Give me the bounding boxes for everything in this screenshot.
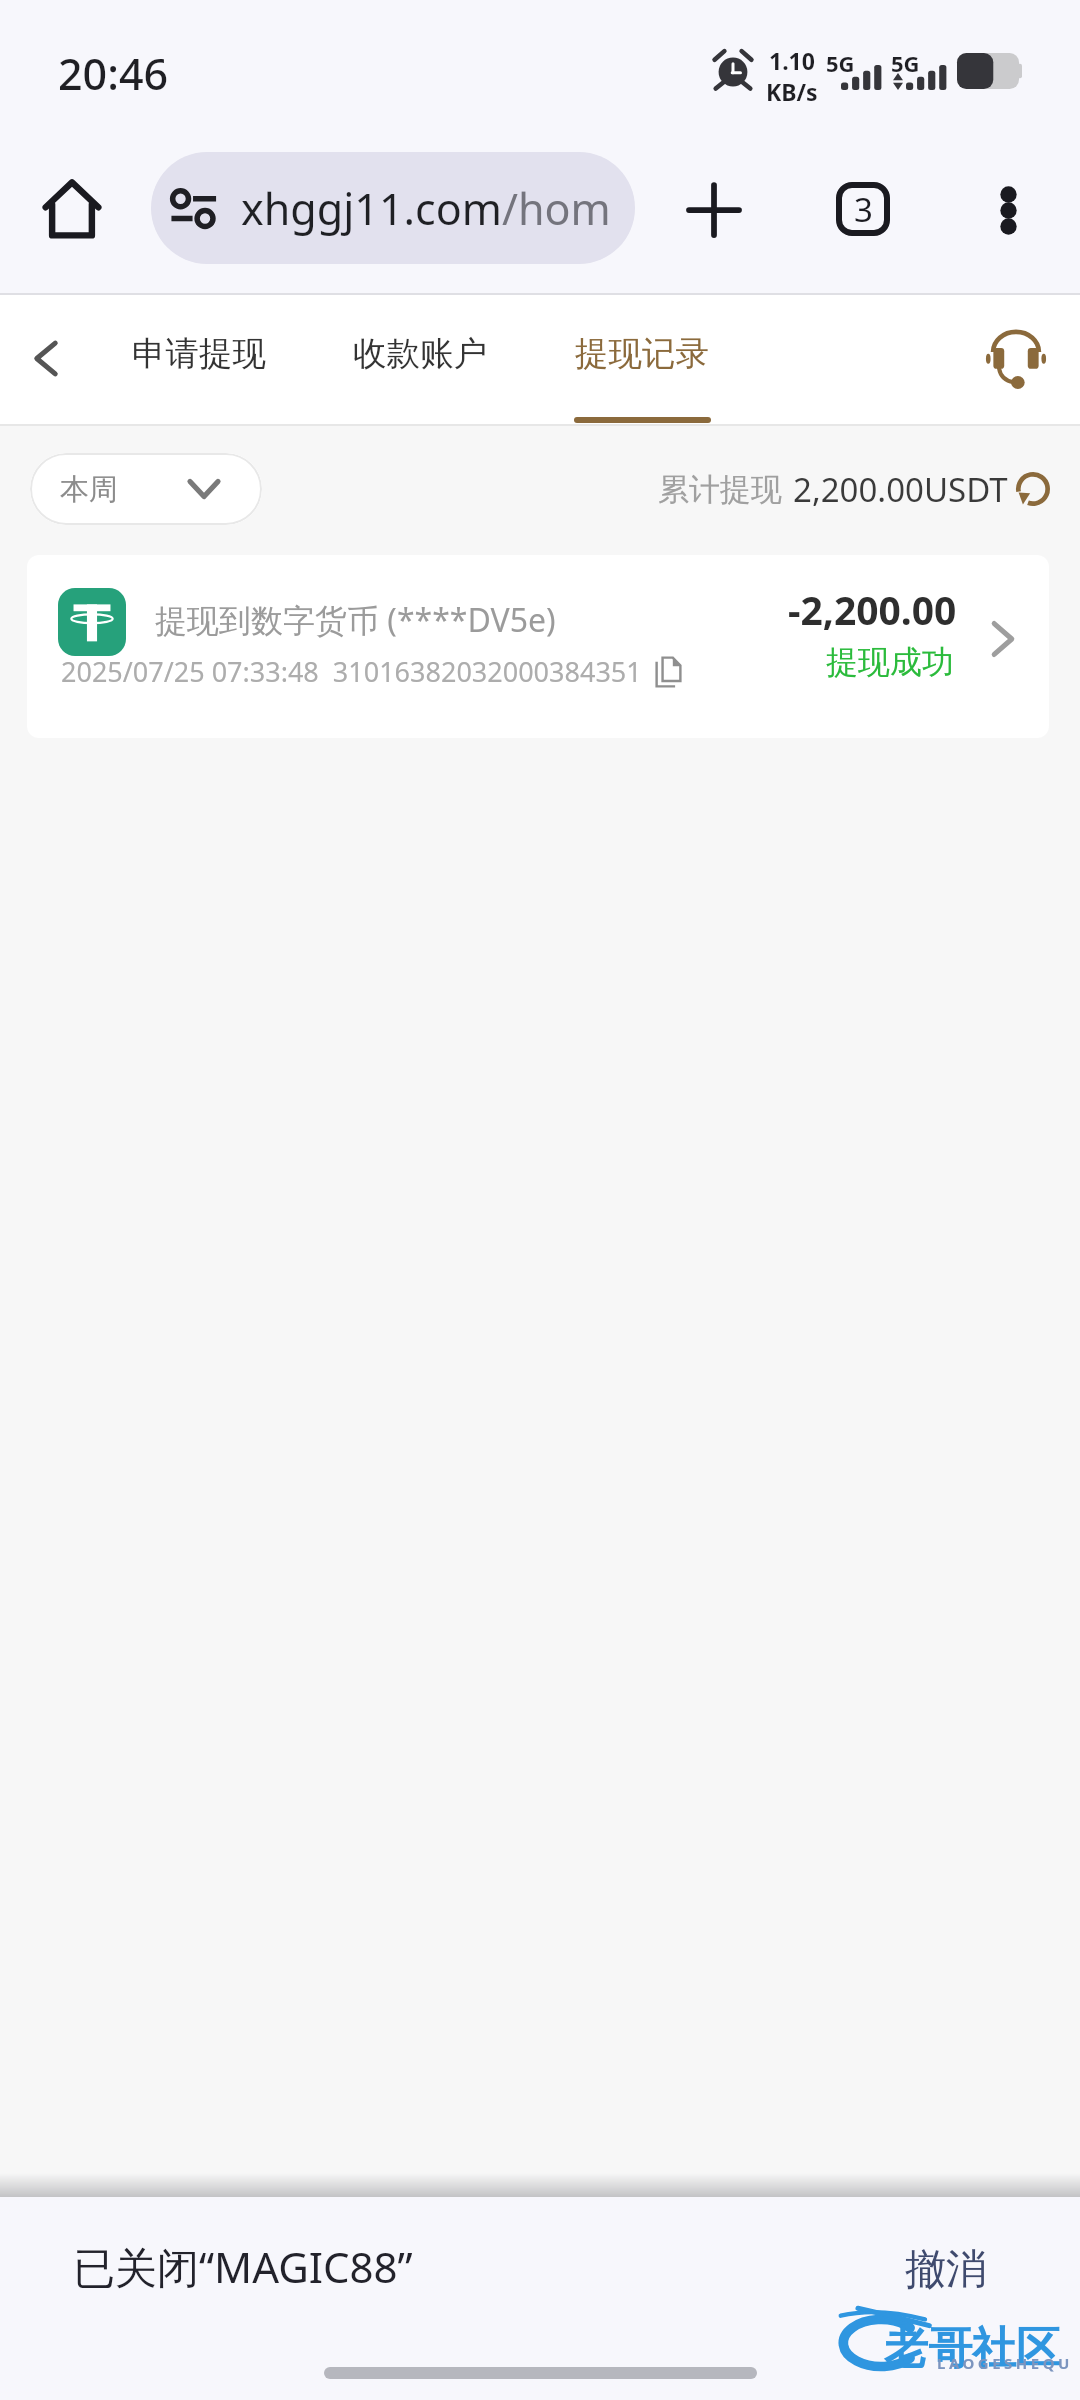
button[interactable]: Back (1, 313, 91, 403)
button[interactable]: 撤消 (876, 2225, 1016, 2315)
staticText: KB/s (766, 76, 818, 107)
staticText: 累计提现 (658, 470, 782, 509)
staticText: LAOGESHEQU (937, 2353, 1073, 2373)
button[interactable]: Tabs (817, 163, 909, 255)
staticText: -2,200.00 (788, 583, 957, 636)
staticText: 20:46 (58, 44, 169, 103)
button[interactable]: Refresh (1010, 466, 1056, 512)
staticText: 1.10 (769, 45, 815, 76)
staticText: 老哥社区 (884, 2321, 1060, 2376)
staticText: 2,200.00USDT (793, 467, 1008, 512)
staticText: 收款账户 (353, 333, 487, 375)
button[interactable]: Customer service (968, 309, 1064, 405)
staticText: 申请提现 (132, 333, 266, 375)
staticText: /hom (502, 179, 611, 238)
staticText: 5G (826, 48, 855, 78)
button[interactable]: New tab (668, 164, 760, 256)
button[interactable]: 申请提现 (121, 295, 277, 424)
staticText: 本周 (60, 471, 118, 508)
staticText: 撤消 (905, 2244, 987, 2296)
staticText: 5G (891, 48, 920, 78)
button[interactable]: 收款账户 (342, 295, 498, 424)
button[interactable]: More options (962, 164, 1054, 256)
staticText: 提现到数字货币 (****DV5e) (155, 598, 556, 642)
staticText: 提现成功 (826, 642, 954, 682)
button[interactable]: Home (26, 163, 118, 255)
button[interactable]: 提现记录 (564, 295, 720, 424)
staticText: 2025/07/25 07:33:48 31016382032000384351 (61, 653, 642, 690)
staticText: 3 (854, 187, 873, 232)
staticText: 提现记录 (575, 333, 709, 375)
button[interactable]: Copy (653, 654, 684, 690)
staticText: 已关闭“MAGIC88” (73, 2238, 413, 2295)
button[interactable]: 提现到数字货币 (****DV5e) (27, 555, 1049, 738)
button[interactable]: 本周 (30, 453, 262, 525)
button[interactable]: Details (973, 609, 1033, 669)
button[interactable]: xhggj11.com (151, 152, 635, 264)
staticText: xhggj11.com (241, 179, 502, 238)
